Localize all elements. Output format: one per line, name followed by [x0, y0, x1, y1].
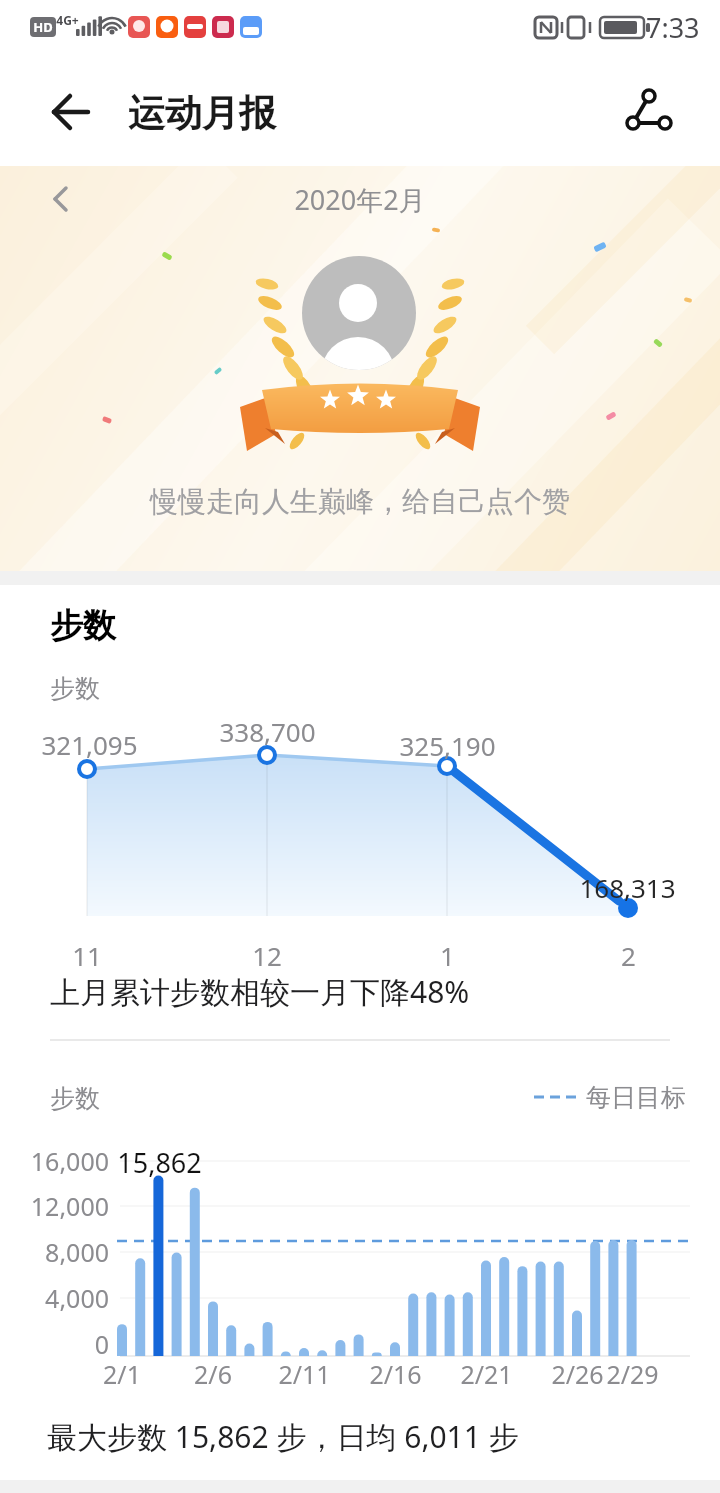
staticText: 2/16 — [369, 1357, 422, 1391]
staticText: 慢慢走向人生巅峰，给自己点个赞 — [150, 484, 570, 519]
staticText: 325,190 — [399, 728, 496, 763]
staticText: 步数 — [50, 1083, 100, 1114]
staticText: 2/26 — [551, 1357, 604, 1391]
staticText: 16,000 — [30, 1144, 109, 1178]
staticText: 步数 — [50, 673, 100, 704]
staticText: 4G+ — [56, 12, 79, 28]
staticText: 338,700 — [219, 714, 316, 749]
staticText: 321,095 — [41, 727, 138, 762]
staticText: 1 — [440, 938, 455, 973]
staticText: 上月累计步数相较一月下降48% — [50, 971, 470, 1012]
staticText: 4,000 — [45, 1281, 109, 1315]
staticText: 2/1 — [103, 1357, 141, 1391]
staticText: 每日目标 — [586, 1082, 686, 1113]
staticText: 7:33 — [646, 9, 700, 46]
staticText: 最大步数 15,862 步，日均 6,011 步 — [47, 1416, 519, 1457]
staticText: 0 — [94, 1327, 109, 1361]
staticText: 2/29 — [606, 1357, 659, 1391]
staticText: 12,000 — [30, 1189, 109, 1223]
staticText: 168,313 — [579, 870, 676, 905]
staticText: 11 — [72, 938, 102, 973]
button[interactable] — [40, 90, 100, 136]
button[interactable] — [36, 174, 86, 224]
staticText: 2020年2月 — [294, 181, 426, 218]
button[interactable] — [618, 86, 682, 140]
staticText: 15,862 — [117, 1144, 202, 1181]
staticText: 运动月报 — [128, 90, 276, 137]
staticText: 2 — [621, 938, 636, 973]
staticText: HD — [33, 18, 53, 36]
staticText: 2/11 — [278, 1357, 331, 1391]
staticText: 2/21 — [460, 1357, 513, 1391]
staticText: 步数 — [50, 605, 116, 647]
staticText: 8,000 — [45, 1235, 109, 1269]
staticText: 2/6 — [194, 1357, 232, 1391]
staticText: 12 — [252, 938, 282, 973]
